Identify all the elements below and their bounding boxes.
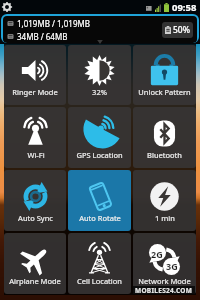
staticText: Unlock Pattern [138, 87, 191, 97]
staticText: GPS Location [76, 150, 123, 160]
button[interactable]: Auto Sync [4, 170, 66, 231]
staticText: Auto Rotate [79, 213, 121, 223]
staticText: Ringer Mode [12, 87, 58, 97]
button[interactable]: Bluetooth [133, 107, 196, 168]
staticText: Bluetooth [147, 150, 182, 160]
button[interactable]: 32% [68, 45, 131, 105]
staticText: 09:58 [172, 1, 197, 14]
staticText: 34MB / 64MB [17, 31, 68, 42]
button[interactable]: Airplane Mode [4, 233, 66, 294]
button[interactable]: Auto Rotate [68, 170, 131, 231]
button[interactable]: Cell Location [68, 233, 131, 294]
button[interactable]: GPS Location [68, 107, 131, 168]
staticText: 2G [151, 248, 163, 260]
staticText: Airplane Mode [9, 276, 61, 286]
staticText: 50% [173, 24, 190, 36]
button[interactable]: 2G [133, 233, 196, 294]
button[interactable]: Ringer Mode [4, 45, 66, 105]
staticText: Wi-Fi [27, 150, 45, 160]
button[interactable]: Wi-Fi [4, 107, 66, 168]
button[interactable]: 50% [162, 22, 193, 38]
staticText: 32% [92, 87, 107, 97]
staticText: Cell Location [77, 276, 122, 286]
staticText: Network Mode [138, 276, 191, 286]
button[interactable]: Unlock Pattern [133, 45, 196, 105]
staticText: Auto Sync [18, 213, 53, 223]
button[interactable]: 1 min [133, 170, 196, 231]
other: Settings [2, 2, 12, 12]
staticText: 1,019MB / 1,019MB [17, 18, 90, 29]
staticText: 1 min [155, 213, 175, 223]
staticText: 3G [166, 260, 178, 272]
staticText: MOBILES24.COM [135, 286, 193, 294]
